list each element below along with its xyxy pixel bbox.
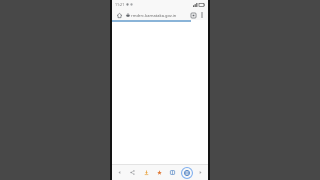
button[interactable]: Share (127, 167, 138, 178)
button[interactable]: Forward (195, 167, 206, 178)
staticText: 11:21 (115, 2, 125, 7)
button[interactable]: rmdrrc.karnataka.gov.in (125, 11, 188, 19)
button[interactable]: Apps (167, 167, 178, 178)
button[interactable]: More options (198, 11, 205, 18)
button[interactable]: Home (115, 11, 123, 19)
button[interactable]: Bookmarks (154, 167, 165, 178)
button[interactable]: Downloads (141, 167, 152, 178)
staticText: rmdrrc.karnataka.gov.in (131, 13, 177, 18)
button[interactable]: Back (114, 167, 125, 178)
button[interactable]: Search (181, 167, 193, 179)
button[interactable]: Tabs (189, 11, 197, 19)
